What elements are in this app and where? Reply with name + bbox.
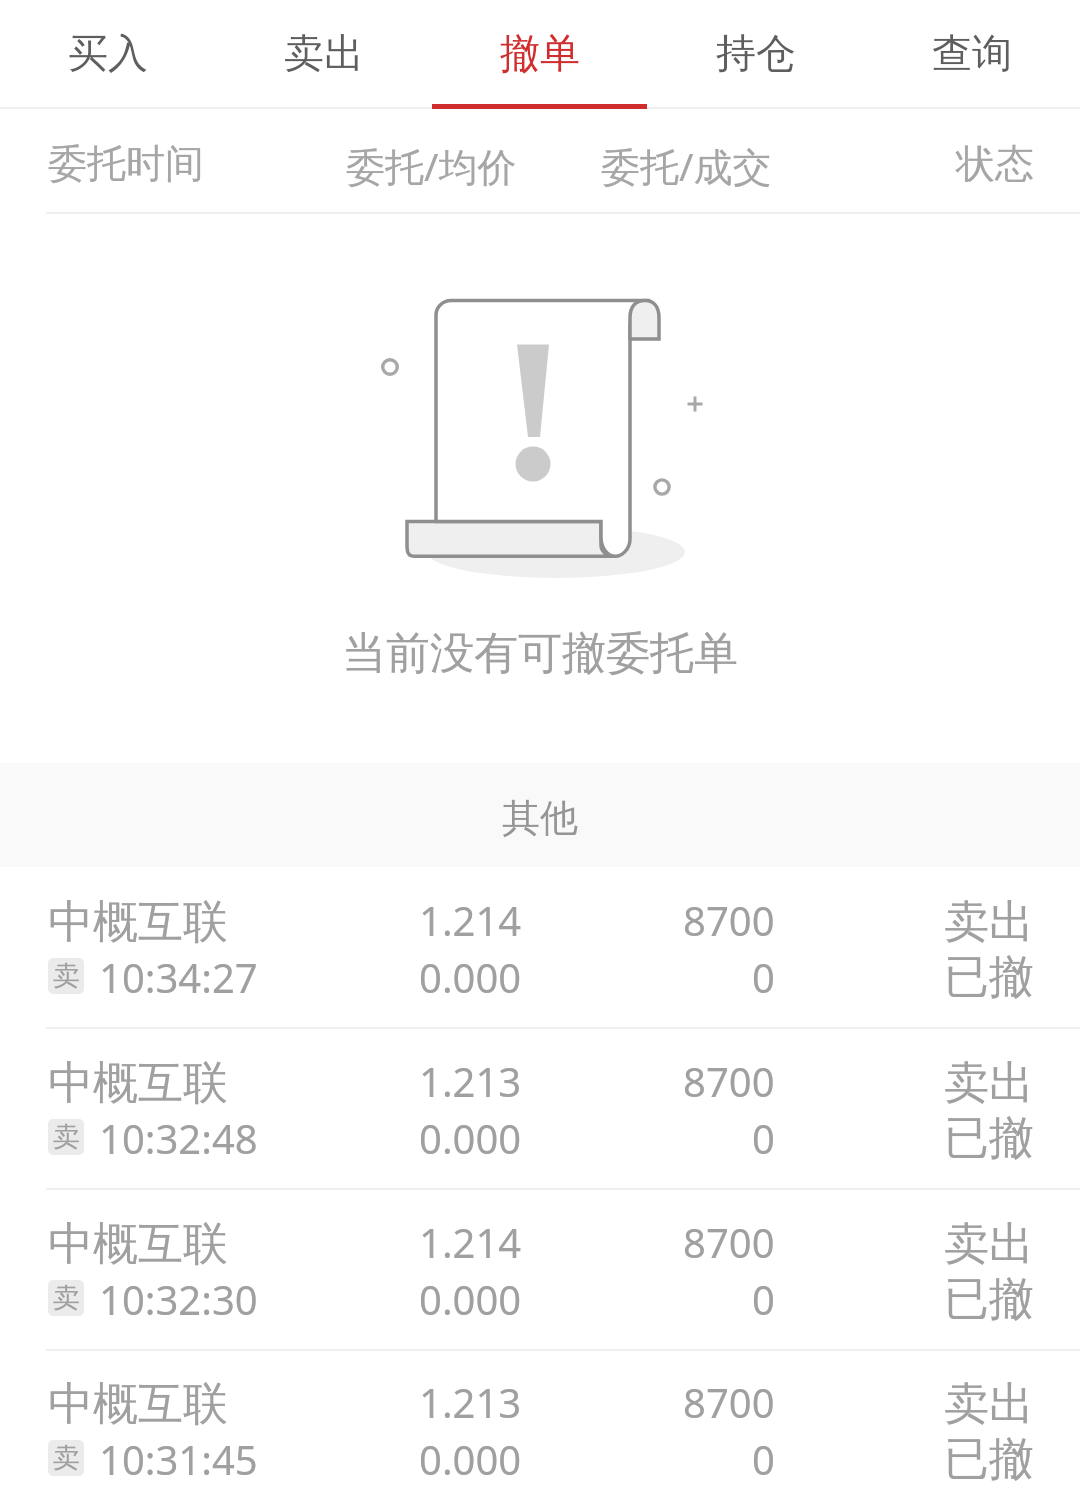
staticText: 中概互联	[48, 894, 228, 951]
staticText: 中概互联	[48, 1376, 228, 1433]
staticText: 10:34:27	[99, 950, 258, 1004]
button[interactable]: 卖出	[216, 0, 432, 105]
staticText: 已撤	[944, 1431, 1034, 1488]
staticText: 卖出	[944, 894, 1034, 951]
staticText: 已撤	[944, 949, 1034, 1006]
staticText: 卖出	[944, 1376, 1034, 1433]
staticText: 中概互联	[48, 1216, 228, 1273]
staticText: 委托/成交	[601, 139, 772, 192]
staticText: 卖	[53, 1120, 80, 1154]
staticText: 当前没有可撤委托单	[342, 626, 738, 681]
staticText: 10:31:45	[99, 1432, 258, 1486]
staticText: 状态	[956, 139, 1034, 188]
staticText: 中概互联	[48, 1055, 228, 1112]
staticText: 卖出	[944, 1216, 1034, 1273]
staticText: 已撤	[944, 1110, 1034, 1167]
staticText: 0	[752, 1111, 775, 1165]
other: No cancellable orders illustration	[372, 292, 712, 592]
staticText: 8700	[683, 1215, 775, 1269]
staticText: 买入	[68, 28, 148, 78]
staticText: 0.000	[419, 1111, 522, 1165]
staticText: 委托/均价	[346, 139, 517, 192]
staticText: 其他	[502, 794, 578, 842]
staticText: 1.214	[419, 1215, 522, 1269]
staticText: 8700	[683, 893, 775, 947]
staticText: 卖	[53, 1441, 80, 1475]
button[interactable]: 中概互联	[0, 868, 1080, 1029]
staticText: 委托时间	[48, 139, 204, 188]
staticText: 1.214	[419, 893, 522, 947]
staticText: 卖出	[944, 1055, 1034, 1112]
staticText: 8700	[683, 1375, 775, 1429]
staticText: 0.000	[419, 1272, 522, 1326]
staticText: 卖	[53, 959, 80, 993]
button[interactable]: 撤单	[432, 0, 648, 105]
staticText: 已撤	[944, 1271, 1034, 1328]
staticText: 1.213	[419, 1054, 522, 1108]
staticText: 10:32:30	[99, 1272, 258, 1326]
staticText: 0	[752, 950, 775, 1004]
staticText: 0.000	[419, 1432, 522, 1486]
button[interactable]: 查询	[864, 0, 1080, 105]
staticText: 卖	[53, 1281, 80, 1315]
staticText: 持仓	[716, 28, 796, 78]
button[interactable]: 中概互联	[0, 1029, 1080, 1190]
staticText: 0.000	[419, 950, 522, 1004]
button[interactable]: 中概互联	[0, 1350, 1080, 1508]
button[interactable]: 中概互联	[0, 1190, 1080, 1351]
staticText: 撤单	[500, 28, 580, 78]
staticText: 查询	[932, 28, 1012, 78]
button[interactable]: 买入	[0, 0, 216, 105]
staticText: 8700	[683, 1054, 775, 1108]
staticText: 10:32:48	[99, 1111, 258, 1165]
staticText: 1.213	[419, 1375, 522, 1429]
staticText: 卖出	[284, 28, 364, 78]
button[interactable]: 持仓	[648, 0, 864, 105]
staticText: 0	[752, 1432, 775, 1486]
staticText: 0	[752, 1272, 775, 1326]
